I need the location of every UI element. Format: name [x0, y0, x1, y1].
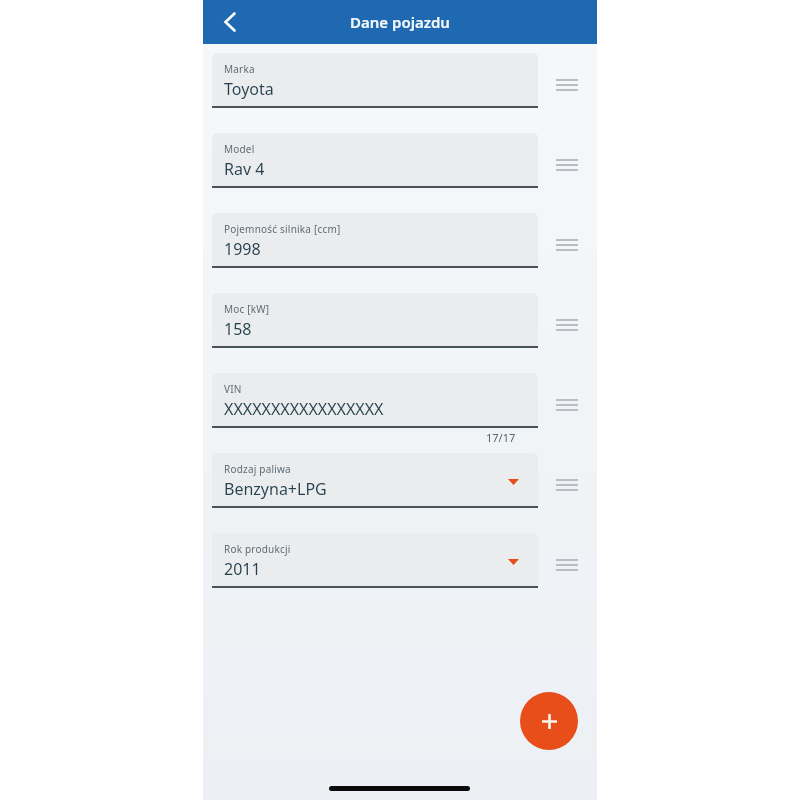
- button[interactable]: [520, 692, 578, 750]
- staticText: 2011: [224, 558, 261, 580]
- button[interactable]: [556, 399, 578, 411]
- button[interactable]: Marka: [212, 53, 538, 108]
- staticText: Toyota: [224, 78, 274, 100]
- button[interactable]: [223, 12, 236, 32]
- staticText: Rodzaj paliwa: [224, 462, 291, 476]
- staticText: Rok produkcji: [224, 542, 291, 556]
- staticText: XXXXXXXXXXXXXXXXX: [224, 398, 384, 420]
- button[interactable]: [556, 479, 578, 491]
- button[interactable]: [556, 559, 578, 571]
- staticText: Model: [224, 142, 255, 156]
- button[interactable]: Moc [kW]: [212, 293, 538, 348]
- staticText: VIN: [224, 382, 242, 396]
- staticText: Marka: [224, 62, 255, 76]
- staticText: Dane pojazdu: [350, 12, 450, 32]
- button[interactable]: [556, 239, 578, 251]
- staticText: 17/17: [486, 430, 516, 445]
- button[interactable]: [556, 79, 578, 91]
- button[interactable]: [556, 159, 578, 171]
- staticText: Pojemność silnika [ccm]: [224, 222, 341, 236]
- staticText: 1998: [224, 238, 261, 260]
- staticText: Benzyna+LPG: [224, 478, 327, 500]
- staticText: 158: [224, 318, 252, 340]
- button[interactable]: Rodzaj paliwa: [212, 453, 538, 508]
- button[interactable]: VIN: [212, 373, 538, 428]
- button[interactable]: [556, 319, 578, 331]
- button[interactable]: Model: [212, 133, 538, 188]
- staticText: Moc [kW]: [224, 302, 270, 316]
- button[interactable]: Rok produkcji: [212, 533, 538, 588]
- staticText: Rav 4: [224, 158, 265, 180]
- button[interactable]: Pojemność silnika [ccm]: [212, 213, 538, 268]
